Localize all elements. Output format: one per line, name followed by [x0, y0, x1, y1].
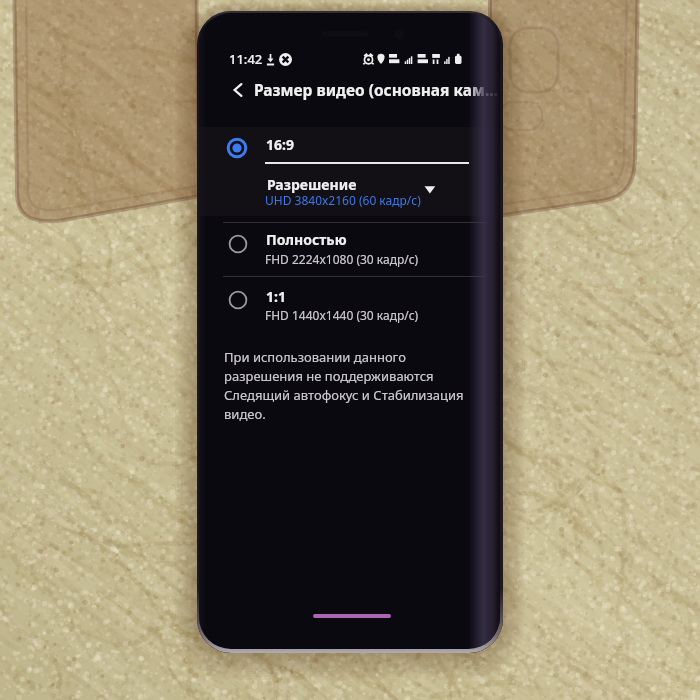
button[interactable]: Домой	[313, 614, 391, 618]
staticText: FHD 1440x1440 (30 кадр/с)	[265, 307, 419, 323]
button[interactable]: Полностью FHD 2224x1080 (30 кадр/с)	[199, 222, 500, 276]
staticText: Разрешение	[267, 175, 357, 194]
staticText: UHD 3840x2160 (60 кадр/с)	[265, 192, 421, 208]
staticText: 16:9	[266, 135, 294, 154]
staticText: Полностью	[266, 230, 347, 249]
button[interactable]: 1:1 FHD 1440x1440 (30 кадр/с)	[199, 276, 500, 330]
button[interactable]: Выбрать разрешение	[420, 181, 440, 198]
staticText: При использовании данного разрешения не …	[224, 348, 472, 423]
staticText: Размер видео (основная кам...	[254, 79, 499, 100]
staticText: 1:1	[266, 287, 286, 306]
staticText: 11:42	[229, 50, 263, 68]
button[interactable]: Назад	[226, 79, 250, 101]
button[interactable]: 1:1	[228, 290, 248, 310]
staticText: FHD 2224x1080 (30 кадр/с)	[265, 251, 419, 267]
button[interactable]: 16:9	[199, 127, 500, 162]
button[interactable]: 16:9	[226, 137, 248, 159]
button[interactable]: Полностью	[228, 234, 248, 254]
button[interactable]: Разрешение UHD 3840x2160 (60 кадр/с)	[262, 169, 477, 214]
